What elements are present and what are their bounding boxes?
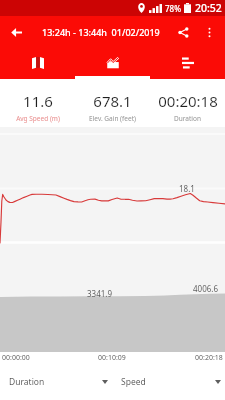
button[interactable]: Back [0,16,32,48]
staticText: Duration [9,376,45,388]
staticText: Speed [121,376,146,388]
staticText: 00:20:18 [158,91,218,111]
staticText: Avg Speed (m) [16,114,60,123]
button[interactable]: 11.6 [0,79,75,127]
button[interactable]: Share [169,18,197,46]
staticText: 00:00:00 [2,353,30,363]
button[interactable]: 00:20:18 [150,79,225,127]
staticText: Elev. Gain (feet) [89,114,136,123]
button[interactable]: Duration [0,364,112,400]
staticText: Duration [174,114,201,123]
button[interactable]: More options [197,20,221,44]
button[interactable]: Details [150,48,225,79]
button[interactable]: Map [0,48,75,79]
staticText: 78% [165,3,181,14]
button[interactable]: Chart [75,48,150,79]
staticText: 3341.9 [87,288,113,299]
button[interactable]: 678.1 [75,79,150,127]
staticText: 00:10:09 [98,353,126,363]
staticText: 18.1 [179,183,195,194]
staticText: 4006.6 [193,283,219,294]
staticText: 20:52 [195,1,222,15]
staticText: 13:24h - 13:44h 01/02/2019 [42,26,160,38]
button[interactable]: Speed [112,364,225,400]
staticText: 678.1 [93,91,132,111]
staticText: 11.6 [23,91,53,111]
staticText: 00:20:18 [195,353,223,363]
